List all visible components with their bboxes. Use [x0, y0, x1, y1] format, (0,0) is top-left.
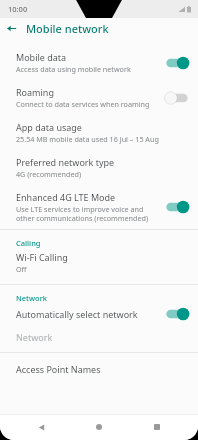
button[interactable]: Toggle off	[164, 91, 190, 105]
staticText: Wi-Fi Calling	[16, 251, 68, 263]
button[interactable]: App data usage	[0, 115, 198, 150]
button[interactable]: Enhanced 4G LTE Mode	[0, 185, 198, 229]
staticText: Network	[16, 331, 53, 343]
staticText: Preferred network type	[16, 156, 115, 168]
button[interactable]: Toggle on	[164, 56, 190, 70]
button[interactable]: Automatically select network	[0, 304, 198, 324]
staticText: Roaming	[16, 86, 54, 98]
button[interactable]: Roaming	[0, 80, 198, 115]
button[interactable]: Access Point Names	[0, 353, 198, 385]
staticText: Mobile data	[16, 51, 67, 63]
button[interactable]: Wi-Fi Calling	[0, 249, 198, 276]
button[interactable]: Back	[0, 18, 22, 39]
button[interactable]: Network	[0, 324, 198, 352]
button[interactable]: Recent apps	[140, 414, 174, 440]
staticText: 10:00	[8, 4, 28, 14]
staticText: Automatically select network	[16, 308, 138, 320]
staticText: Off	[16, 264, 27, 274]
staticText: Network	[16, 293, 47, 303]
button[interactable]: Preferred network type	[0, 150, 198, 185]
button[interactable]: Mobile data	[0, 45, 198, 80]
button[interactable]: Home	[82, 414, 116, 440]
staticText: Mobile network	[26, 21, 109, 36]
staticText: 25.54 MB mobile data used 16 Jul – 15 Au…	[16, 134, 159, 144]
button[interactable]: Toggle on	[164, 200, 190, 214]
staticText: Connect to data services when roaming	[16, 99, 150, 109]
staticText: Calling	[16, 238, 41, 248]
staticText: Enhanced 4G LTE Mode	[16, 191, 116, 203]
staticText: Access data using mobile network	[16, 64, 131, 74]
staticText: Access Point Names	[16, 363, 101, 375]
staticText: App data usage	[16, 121, 82, 133]
button[interactable]: Toggle on	[164, 307, 190, 321]
staticText: 4G (recommended)	[16, 169, 82, 179]
staticText: Use LTE services to improve voice and ot…	[16, 204, 158, 223]
button[interactable]: Back	[24, 414, 58, 440]
